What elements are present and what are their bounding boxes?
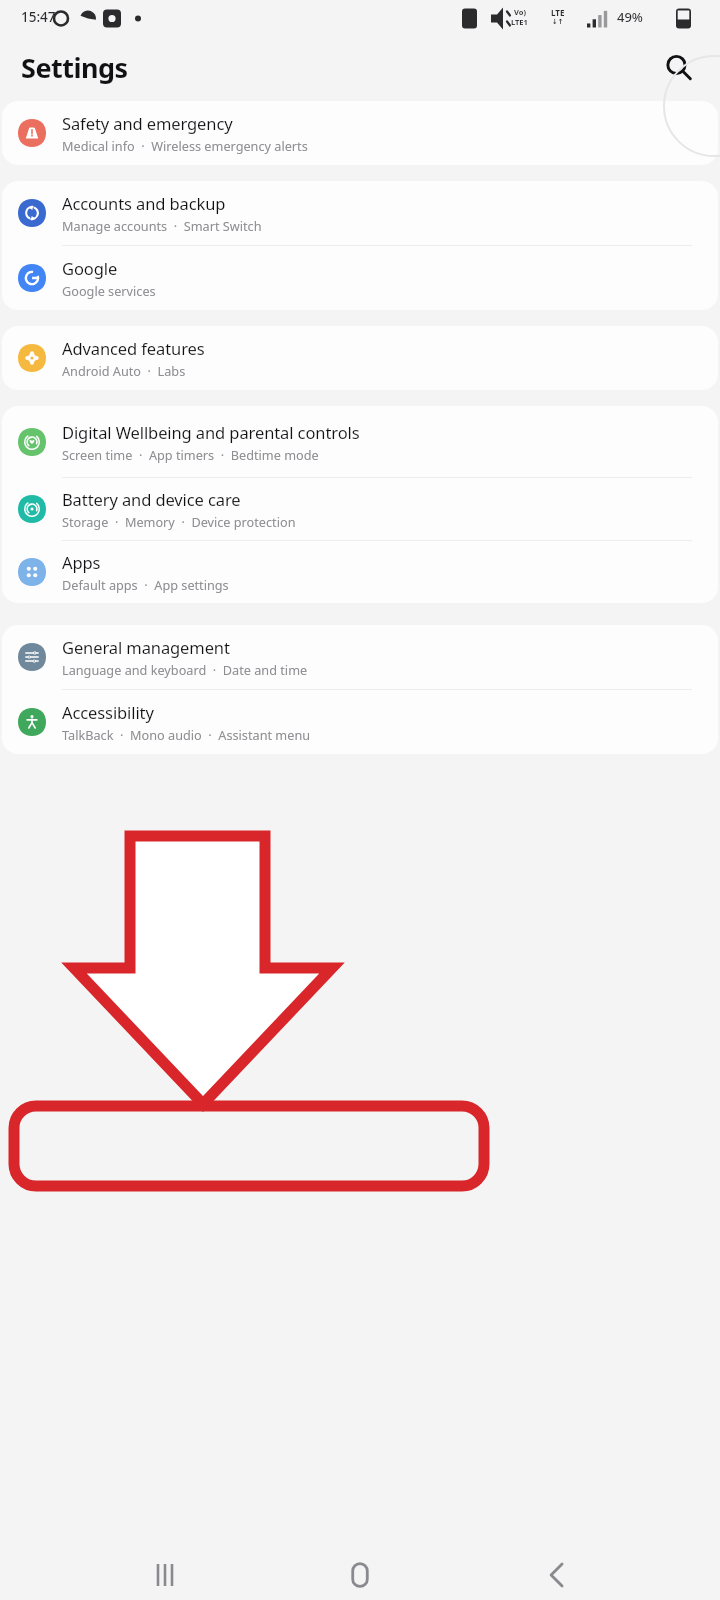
button[interactable]: Accessibility	[2, 690, 718, 754]
staticText: Google	[62, 257, 118, 279]
button[interactable]: Digital Wellbeing and parental controls	[2, 406, 718, 477]
staticText: 49%	[617, 8, 643, 26]
button[interactable]: Search	[654, 43, 702, 91]
staticText: Storage · Memory · Device protection	[62, 513, 296, 530]
staticText: General management	[62, 636, 230, 658]
staticText: ↓↑	[552, 18, 564, 26]
staticText: Settings	[21, 49, 128, 86]
button[interactable]: Back	[525, 1550, 585, 1600]
staticText: Apps	[62, 551, 101, 573]
button[interactable]: Home	[330, 1550, 390, 1600]
staticText: Accounts and backup	[62, 192, 226, 214]
button[interactable]: Apps	[2, 541, 718, 603]
staticText: Manage accounts · Smart Switch	[62, 217, 262, 234]
button[interactable]: Safety and emergency	[2, 101, 718, 165]
staticText: LTE1	[511, 17, 528, 27]
staticText: Advanced features	[62, 337, 205, 359]
staticText: Google services	[62, 282, 156, 299]
staticText: Medical info · Wireless emergency alerts	[62, 137, 308, 154]
button[interactable]: Google	[2, 246, 718, 310]
button[interactable]: Accounts and backup	[2, 181, 718, 245]
button[interactable]: Battery and device care	[2, 478, 718, 540]
staticText: Screen time · App timers · Bedtime mode	[62, 446, 319, 463]
staticText: Accessibility	[62, 701, 154, 723]
staticText: TalkBack · Mono audio · Assistant menu	[62, 726, 311, 743]
staticText: Battery and device care	[62, 488, 241, 510]
staticText: Android Auto · Labs	[62, 362, 186, 379]
staticText: Safety and emergency	[62, 112, 233, 134]
button[interactable]: General management	[2, 625, 718, 689]
staticText: LTE	[551, 7, 565, 18]
staticText: 15:47	[21, 8, 56, 26]
staticText: Digital Wellbeing and parental controls	[62, 421, 360, 443]
staticText: Language and keyboard · Date and time	[62, 661, 308, 678]
button[interactable]: Advanced features	[2, 326, 718, 390]
staticText: Vo)	[514, 7, 526, 17]
staticText: Default apps · App settings	[62, 576, 229, 593]
button[interactable]: Recent apps	[135, 1550, 195, 1600]
